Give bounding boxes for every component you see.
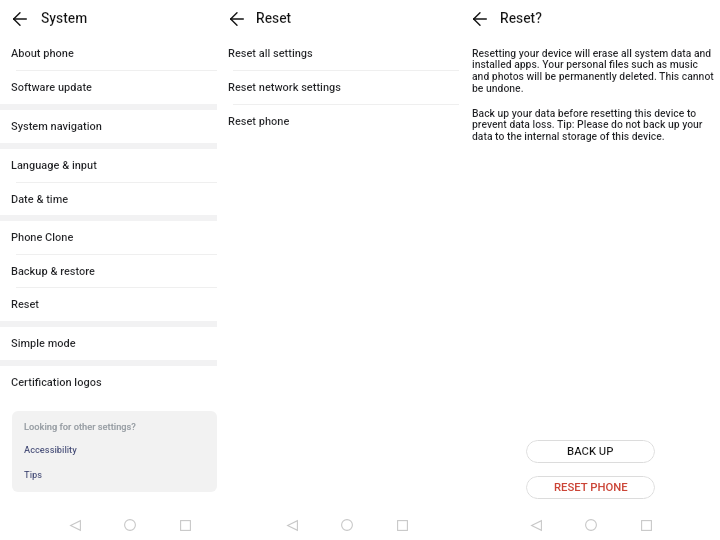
staticText: Language & input: [11, 159, 97, 172]
staticText: Software update: [11, 81, 92, 94]
button[interactable]: Home: [577, 511, 605, 539]
button[interactable]: Language & input: [0, 149, 217, 182]
button[interactable]: Back: [522, 511, 550, 539]
button[interactable]: Reset: [0, 288, 217, 321]
button[interactable]: Back: [278, 511, 306, 539]
button[interactable]: Back: [466, 5, 494, 33]
button[interactable]: Reset all settings: [217, 37, 461, 70]
button[interactable]: Software update: [0, 71, 217, 104]
button[interactable]: Reset network settings: [217, 71, 461, 104]
staticText: Looking for other settings?: [24, 421, 136, 432]
button[interactable]: Simple mode: [0, 327, 217, 360]
button[interactable]: Date & time: [0, 183, 217, 215]
staticText: Reset: [256, 10, 292, 26]
button[interactable]: About phone: [0, 37, 217, 70]
button[interactable]: BACK UP: [526, 440, 655, 463]
button[interactable]: Backup & restore: [0, 255, 217, 287]
button[interactable]: Back: [61, 511, 89, 539]
staticText: Date & time: [11, 193, 69, 206]
staticText: Reset phone: [228, 115, 290, 128]
button[interactable]: Home: [333, 511, 361, 539]
staticText: Backup & restore: [11, 265, 95, 278]
button[interactable]: Recents: [171, 511, 199, 539]
staticText: RESET PHONE: [554, 481, 628, 494]
button[interactable]: Back: [223, 5, 251, 33]
button[interactable]: Certification logos: [0, 366, 217, 399]
staticText: Simple mode: [11, 337, 76, 350]
staticText: System navigation: [11, 120, 102, 133]
button[interactable]: RESET PHONE: [526, 476, 655, 499]
button[interactable]: Recents: [632, 511, 660, 539]
staticText: Reset: [11, 298, 40, 311]
staticText: Phone Clone: [11, 231, 74, 244]
button[interactable]: Accessibility: [24, 444, 77, 455]
staticText: BACK UP: [567, 445, 614, 458]
button[interactable]: Phone Clone: [0, 221, 217, 254]
staticText: Reset all settings: [228, 47, 313, 60]
staticText: System: [41, 10, 88, 26]
button[interactable]: Tips: [24, 469, 43, 480]
staticText: Resetting your device will erase all sys…: [472, 47, 714, 95]
button[interactable]: Back: [6, 5, 34, 33]
button[interactable]: System navigation: [0, 110, 217, 143]
button[interactable]: Home: [116, 511, 144, 539]
staticText: Reset network settings: [228, 81, 341, 94]
staticText: Reset?: [500, 10, 542, 26]
button[interactable]: Reset phone: [217, 105, 461, 138]
staticText: Certification logos: [11, 376, 102, 389]
staticText: Back up your data before resetting this …: [472, 107, 714, 143]
staticText: About phone: [11, 47, 74, 60]
button[interactable]: Recents: [388, 511, 416, 539]
